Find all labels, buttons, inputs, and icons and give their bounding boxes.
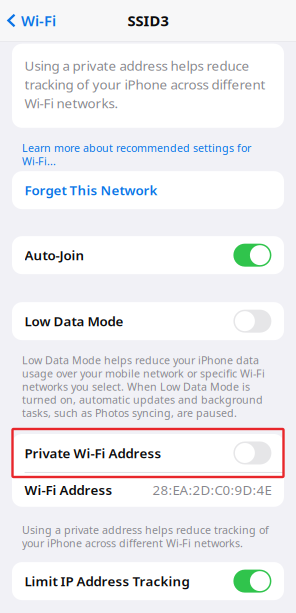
staticText: Low Data Mode helps reduce your iPhone d… <box>22 353 265 420</box>
button[interactable]: Forget This Network <box>12 171 284 209</box>
staticText: 28:EA:2D:C0:9D:4E <box>152 481 271 499</box>
staticText: Using a private address helps reduce tra… <box>22 523 269 550</box>
staticText: Low Data Mode <box>25 312 124 330</box>
button[interactable]: Private Wi-Fi Address <box>12 434 284 472</box>
staticText: Learn more about recommended settings fo… <box>22 141 251 168</box>
staticText: Private Wi-Fi Address <box>25 444 162 462</box>
staticText: Limit IP Address Tracking <box>25 572 190 590</box>
staticText: SSID3 <box>127 11 168 30</box>
button[interactable]: Auto-Join <box>12 236 284 274</box>
staticText: Wi-Fi <box>21 11 56 30</box>
button[interactable]: Low Data Mode <box>12 302 284 340</box>
staticText: Auto-Join <box>25 246 85 264</box>
staticText: Forget This Network <box>25 181 158 199</box>
button[interactable]: Limit IP Address Tracking <box>12 562 284 600</box>
button[interactable]: Wi-Fi <box>0 5 66 36</box>
staticText: Wi-Fi Address <box>25 481 113 499</box>
staticText: Using a private address helps reduce tra… <box>25 57 266 112</box>
